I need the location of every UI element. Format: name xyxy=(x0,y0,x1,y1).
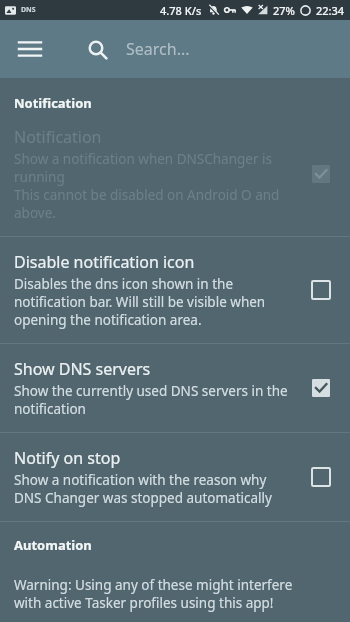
button[interactable]: Unchecked xyxy=(304,460,338,494)
staticText: Notification xyxy=(14,94,92,112)
staticText: Disable notification icon xyxy=(14,251,195,273)
staticText: Show a notification when DNSChanger is r… xyxy=(14,150,296,222)
button[interactable]: Checked xyxy=(304,371,338,405)
staticText: 22:34 xyxy=(316,3,345,18)
staticText: Notify on stop xyxy=(14,447,121,469)
staticText: Warning: Using any of these might interf… xyxy=(14,576,320,612)
staticText: Notification xyxy=(14,126,102,148)
staticText: Show the currently used DNS servers in t… xyxy=(14,382,296,418)
button[interactable]: Notify on stop xyxy=(0,433,350,521)
staticText: Show DNS servers xyxy=(14,358,151,380)
button[interactable]: Search... xyxy=(88,20,350,78)
staticText: Show a notification with the reason why … xyxy=(14,471,296,507)
button: Notification xyxy=(0,112,350,236)
button: Checked xyxy=(304,157,338,191)
staticText: Automation xyxy=(14,536,92,554)
button[interactable]: Unchecked xyxy=(304,273,338,307)
staticText: Search... xyxy=(126,38,190,60)
button[interactable]: Open navigation menu xyxy=(6,25,54,73)
staticText: Disables the dns icon shown in the notif… xyxy=(14,275,296,329)
staticText: 27% xyxy=(273,3,295,18)
button[interactable]: Disable notification icon xyxy=(0,237,350,343)
staticText: 4.78 K/s xyxy=(160,3,202,18)
staticText: DNS xyxy=(21,5,36,15)
button[interactable]: Show DNS servers xyxy=(0,344,350,432)
